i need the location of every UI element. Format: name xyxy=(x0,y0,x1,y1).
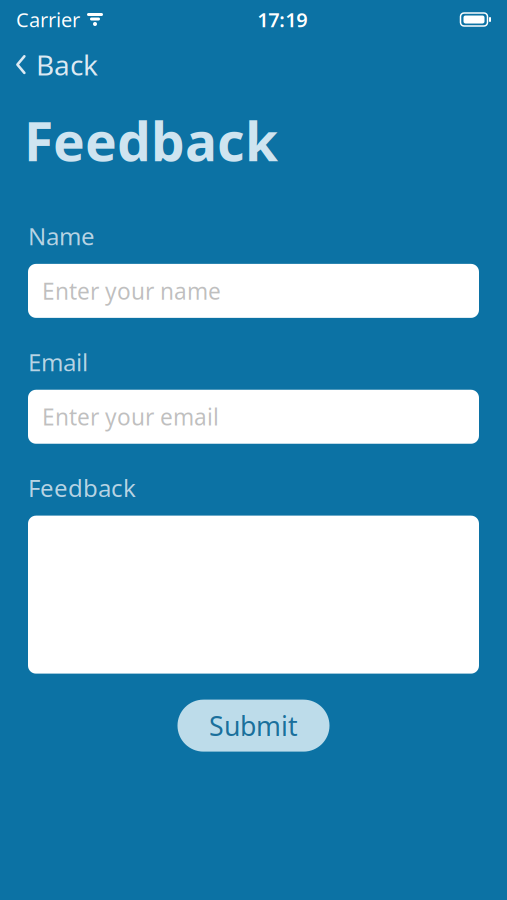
staticText: 17:19 xyxy=(257,6,307,33)
button[interactable]: Feedback text field xyxy=(28,516,479,674)
button[interactable]: Enter your email xyxy=(28,390,479,444)
staticText: Submit xyxy=(209,708,298,743)
staticText: Email xyxy=(28,346,88,378)
staticText: Feedback xyxy=(28,472,136,504)
staticText: Back xyxy=(36,46,98,83)
button[interactable]: Back xyxy=(0,40,98,89)
staticText: Carrier xyxy=(16,6,80,33)
staticText: Enter your email xyxy=(42,402,219,432)
button[interactable]: Enter your name xyxy=(28,264,479,318)
button[interactable]: Submit xyxy=(177,700,329,752)
staticText: Name xyxy=(28,220,95,252)
staticText: Feedback xyxy=(24,105,278,176)
staticText: Enter your name xyxy=(42,276,221,306)
